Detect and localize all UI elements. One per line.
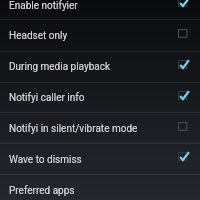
staticText: Notifyi in silent/vibrate mode xyxy=(9,123,194,135)
button[interactable]: Enabled, tap to disable xyxy=(172,55,196,75)
button[interactable]: Wave to dismiss xyxy=(0,144,200,175)
staticText: Enable notifyier xyxy=(9,0,194,12)
button[interactable]: Enable notifyier xyxy=(0,0,200,21)
button[interactable]: During media playback xyxy=(0,51,200,82)
button[interactable]: Notifyi in silent/vibrate mode xyxy=(0,113,200,144)
button[interactable]: Enabled, tap to disable xyxy=(172,147,196,167)
button[interactable]: Preferred apps xyxy=(0,175,200,200)
staticText: Headset only xyxy=(9,30,194,42)
button[interactable]: Enabled, tap to disable xyxy=(172,86,196,106)
staticText: Preferred apps xyxy=(9,185,194,197)
button[interactable]: Disabled, tap to enable xyxy=(172,24,196,44)
button[interactable]: Enabled, tap to disable xyxy=(172,0,196,13)
button[interactable]: Headset only xyxy=(0,20,200,51)
button[interactable]: Notifyi caller info xyxy=(0,82,200,113)
button[interactable]: Disabled, tap to enable xyxy=(172,117,196,137)
staticText: Wave to dismiss xyxy=(9,154,194,166)
staticText: During media playback xyxy=(9,61,194,73)
staticText: Notifyi caller info xyxy=(9,92,194,104)
